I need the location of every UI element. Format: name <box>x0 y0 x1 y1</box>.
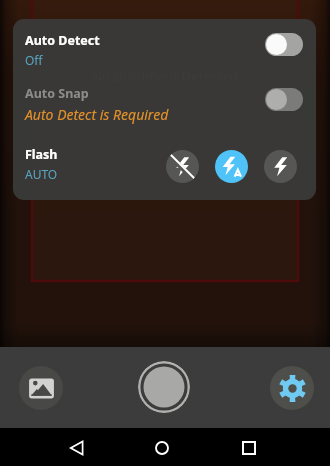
button[interactable]: Gallery <box>19 366 63 410</box>
button[interactable]: Flash off <box>166 150 199 183</box>
staticText: Flash <box>25 146 58 163</box>
staticText: Auto Detect <box>25 32 100 49</box>
button[interactable]: Toggle <box>265 33 303 56</box>
button[interactable]: Home <box>143 429 181 466</box>
button[interactable]: Auto Detect <box>13 19 316 79</box>
staticText: Auto Snap <box>25 85 89 102</box>
button[interactable]: Shutter <box>138 361 190 413</box>
staticText: AUTO <box>25 166 58 182</box>
staticText: Off <box>25 52 43 68</box>
button[interactable]: Recent apps <box>230 429 268 466</box>
button[interactable]: Auto Snap <box>13 79 316 139</box>
button[interactable]: Settings <box>270 366 314 410</box>
button[interactable]: Flash on <box>264 150 297 183</box>
button[interactable]: Toggle <box>265 88 303 111</box>
button[interactable]: Back <box>58 429 96 466</box>
staticText: Auto Detect is Required <box>25 105 169 124</box>
button[interactable]: Flash auto <box>215 150 248 183</box>
